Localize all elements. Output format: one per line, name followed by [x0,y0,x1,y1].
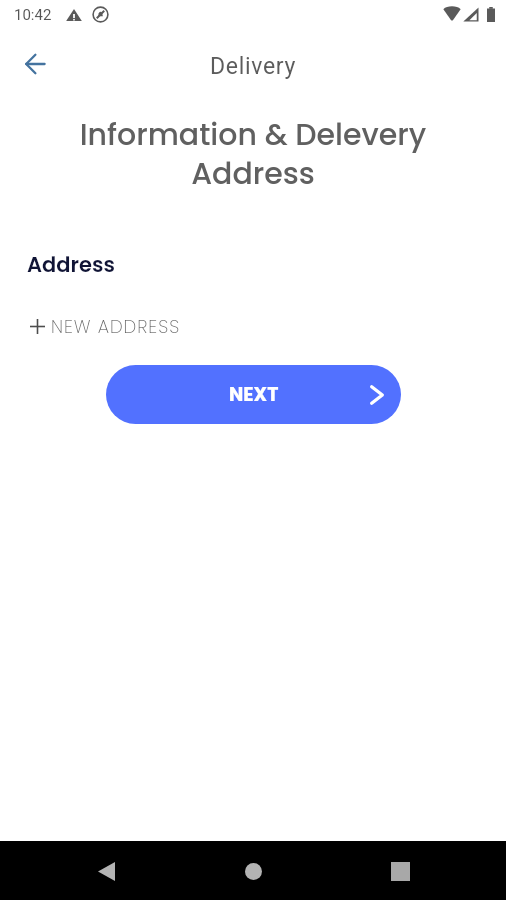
staticText: NEW ADDRESS [51,314,181,339]
button[interactable]: NEXT [106,365,401,424]
staticText: Address [27,250,115,279]
staticText: NEXT [229,381,279,408]
button[interactable]: NEW ADDRESS [24,310,187,343]
staticText: Information & Delevery Address [20,114,486,194]
staticText: 10:42 [14,6,52,24]
staticText: Delivery [210,53,297,80]
button[interactable]: Back [85,850,127,892]
button[interactable]: Recent apps [379,850,421,892]
button[interactable]: Back [13,42,57,86]
button[interactable]: Home [232,850,274,892]
